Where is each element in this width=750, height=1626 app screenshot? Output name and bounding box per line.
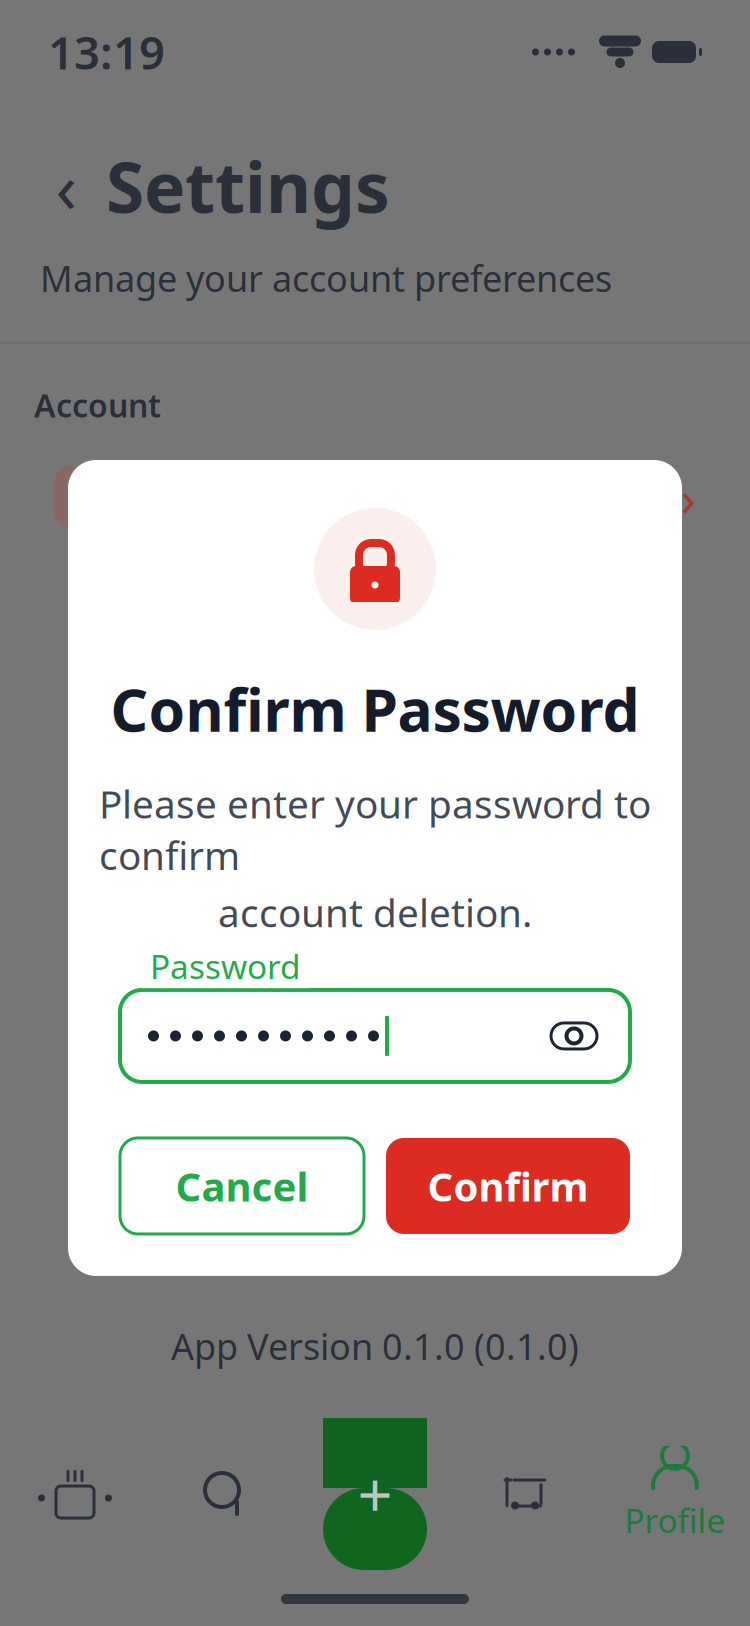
staticText: Confirm Password bbox=[110, 670, 639, 748]
button[interactable]: Recipes bbox=[0, 1434, 150, 1554]
staticText: ‹ bbox=[55, 140, 76, 232]
button[interactable]: Profile bbox=[600, 1434, 750, 1554]
button[interactable]: Cart bbox=[450, 1434, 600, 1554]
staticText: Delete Account bbox=[142, 471, 426, 524]
staticText: App Version 0.1.0 (0.1.0) bbox=[171, 1322, 579, 1370]
staticText: Please enter your password to confirm bbox=[99, 778, 651, 881]
button[interactable]: Cancel bbox=[120, 1138, 364, 1234]
staticText: Profile bbox=[624, 1498, 725, 1542]
staticText: › bbox=[681, 465, 696, 529]
staticText: Account bbox=[34, 384, 161, 426]
staticText: + bbox=[357, 1453, 392, 1535]
staticText: Confirm bbox=[427, 1159, 588, 1212]
button[interactable]: Add bbox=[323, 1418, 427, 1570]
button[interactable]: Search bbox=[150, 1434, 300, 1554]
staticText: Password bbox=[150, 944, 301, 988]
staticText: account deletion. bbox=[218, 887, 532, 938]
staticText: 13:19 bbox=[48, 22, 165, 82]
staticText: Cancel bbox=[175, 1159, 308, 1212]
staticText: Settings bbox=[106, 140, 390, 232]
staticText: Manage your account preferences bbox=[40, 254, 612, 302]
button[interactable]: Delete Account bbox=[0, 454, 750, 540]
button[interactable]: Show password bbox=[546, 1008, 602, 1064]
button[interactable]: Confirm bbox=[386, 1138, 630, 1234]
button[interactable]: Back bbox=[44, 157, 88, 215]
